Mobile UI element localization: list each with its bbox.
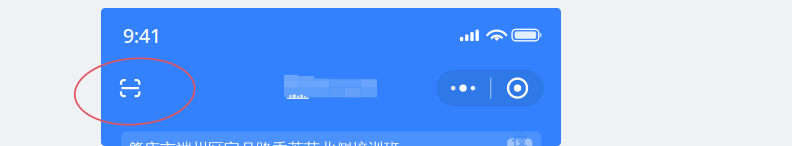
staticText: 肇庆市端州区宝月路香荔苑北侧培训班 [128,140,400,146]
staticText: 9:41 [123,22,161,48]
button[interactable]: More [436,70,490,106]
button[interactable]: 搜索 [507,138,532,146]
button[interactable]: Scan [110,68,150,108]
staticText: 搜索 [512,130,528,146]
button[interactable]: Close mini program [491,70,544,106]
